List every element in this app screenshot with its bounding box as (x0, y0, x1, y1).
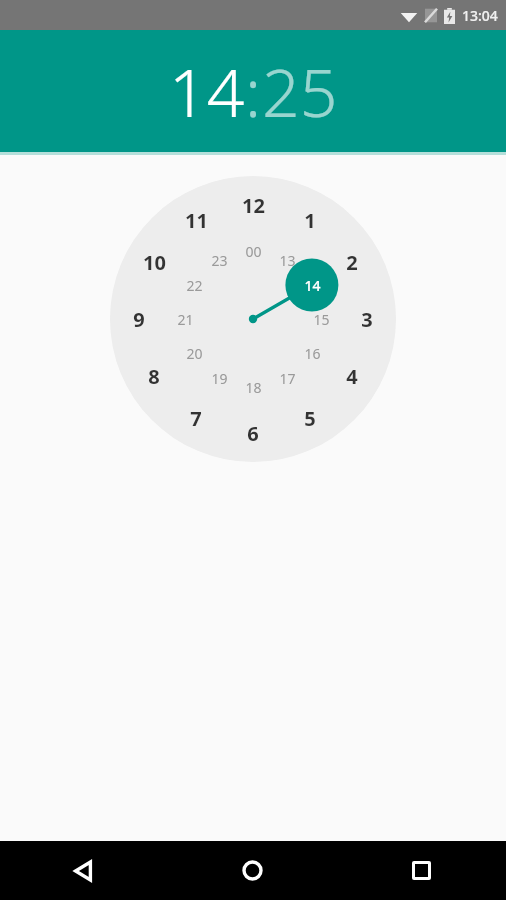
button[interactable]: 11 (179, 203, 213, 237)
button[interactable]: 17 (272, 363, 302, 393)
staticText: 23 (211, 251, 228, 270)
button[interactable]: 1 (293, 203, 327, 237)
staticText: 9 (133, 306, 145, 333)
button[interactable]: Back (0, 841, 168, 900)
button[interactable]: 23 (204, 245, 234, 275)
staticText: 12 (242, 192, 265, 219)
staticText: 21 (177, 310, 194, 329)
button[interactable]: 20 (179, 338, 209, 368)
staticText: 17 (279, 369, 296, 388)
staticText: 25 (262, 46, 338, 136)
staticText: 13 (279, 251, 296, 270)
button[interactable]: 5 (293, 401, 327, 435)
staticText: 4 (346, 363, 358, 390)
button[interactable]: 14 (169, 46, 245, 136)
button[interactable]: 1 (110, 176, 396, 462)
staticText: 14 (304, 276, 321, 295)
button[interactable]: 7 (179, 401, 213, 435)
staticText: 20 (186, 344, 203, 363)
staticText: 00 (245, 242, 262, 261)
button[interactable]: 16 (297, 338, 327, 368)
staticText: 18 (245, 378, 262, 397)
button[interactable]: 25 (262, 46, 338, 136)
button[interactable]: 18 (238, 372, 268, 402)
button[interactable]: 00 (238, 236, 268, 266)
staticText: : (245, 46, 262, 136)
staticText: 13:04 (462, 6, 498, 25)
button[interactable]: 12 (236, 188, 270, 222)
button[interactable]: Home (168, 841, 337, 900)
button[interactable]: 21 (170, 304, 200, 334)
staticText: 8 (148, 363, 160, 390)
staticText: 7 (190, 405, 202, 432)
staticText: 2 (346, 249, 358, 276)
staticText: 5 (304, 405, 316, 432)
button[interactable]: 14 (297, 270, 327, 300)
staticText: 3 (361, 306, 373, 333)
staticText: 10 (143, 249, 166, 276)
button[interactable]: 4 (335, 359, 369, 393)
button[interactable]: 15 (306, 304, 336, 334)
button[interactable]: 3 (350, 302, 384, 336)
button[interactable]: 6 (236, 416, 270, 450)
button[interactable]: 13 (272, 245, 302, 275)
button[interactable]: 10 (137, 245, 171, 279)
button[interactable]: 8 (137, 359, 171, 393)
staticText: 1 (304, 207, 316, 234)
button[interactable]: Recent apps (337, 841, 506, 900)
staticText: 16 (304, 344, 321, 363)
button[interactable]: 22 (179, 270, 209, 300)
staticText: 11 (185, 207, 208, 234)
staticText: 22 (186, 276, 203, 295)
staticText: 19 (211, 369, 228, 388)
button[interactable]: 9 (122, 302, 156, 336)
staticText: 14 (169, 46, 245, 136)
staticText: 6 (247, 420, 259, 447)
button[interactable]: 19 (204, 363, 234, 393)
staticText: 15 (313, 310, 330, 329)
button[interactable]: 2 (335, 245, 369, 279)
